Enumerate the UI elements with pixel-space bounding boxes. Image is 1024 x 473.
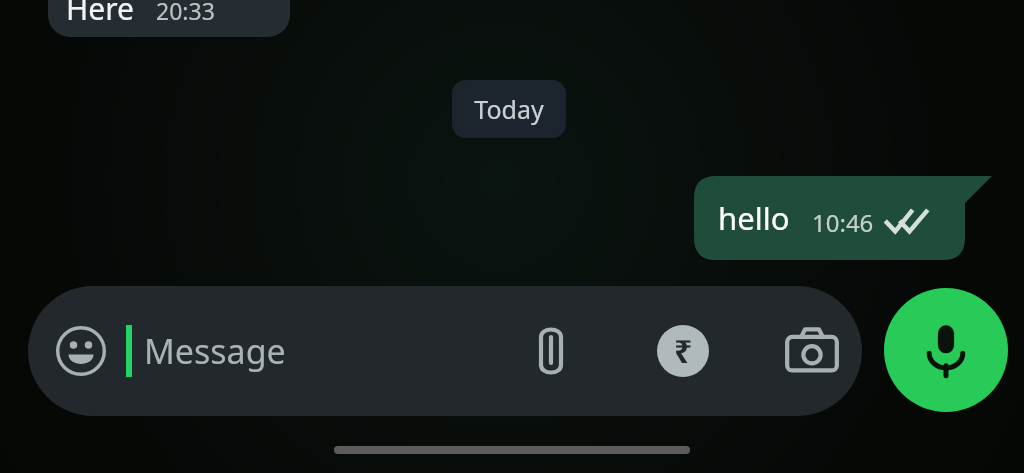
staticText: Message: [144, 328, 286, 374]
staticText: hello: [718, 197, 790, 239]
button[interactable]: hello: [694, 176, 992, 260]
button[interactable]: Voice message: [884, 288, 1008, 412]
button[interactable]: Attach: [518, 318, 584, 384]
button[interactable]: Today: [452, 80, 566, 138]
staticText: Here: [66, 0, 134, 29]
staticText: 10:46: [812, 206, 874, 239]
staticText: ₹: [674, 329, 693, 373]
button[interactable]: Payment: [650, 318, 716, 384]
button[interactable]: Here: [48, 0, 290, 37]
button[interactable]: Camera: [778, 317, 846, 385]
button[interactable]: Emoji: [50, 320, 112, 382]
staticText: Today: [474, 92, 544, 126]
staticText: 20:33: [156, 0, 215, 26]
button[interactable]: Emoji: [28, 286, 862, 416]
